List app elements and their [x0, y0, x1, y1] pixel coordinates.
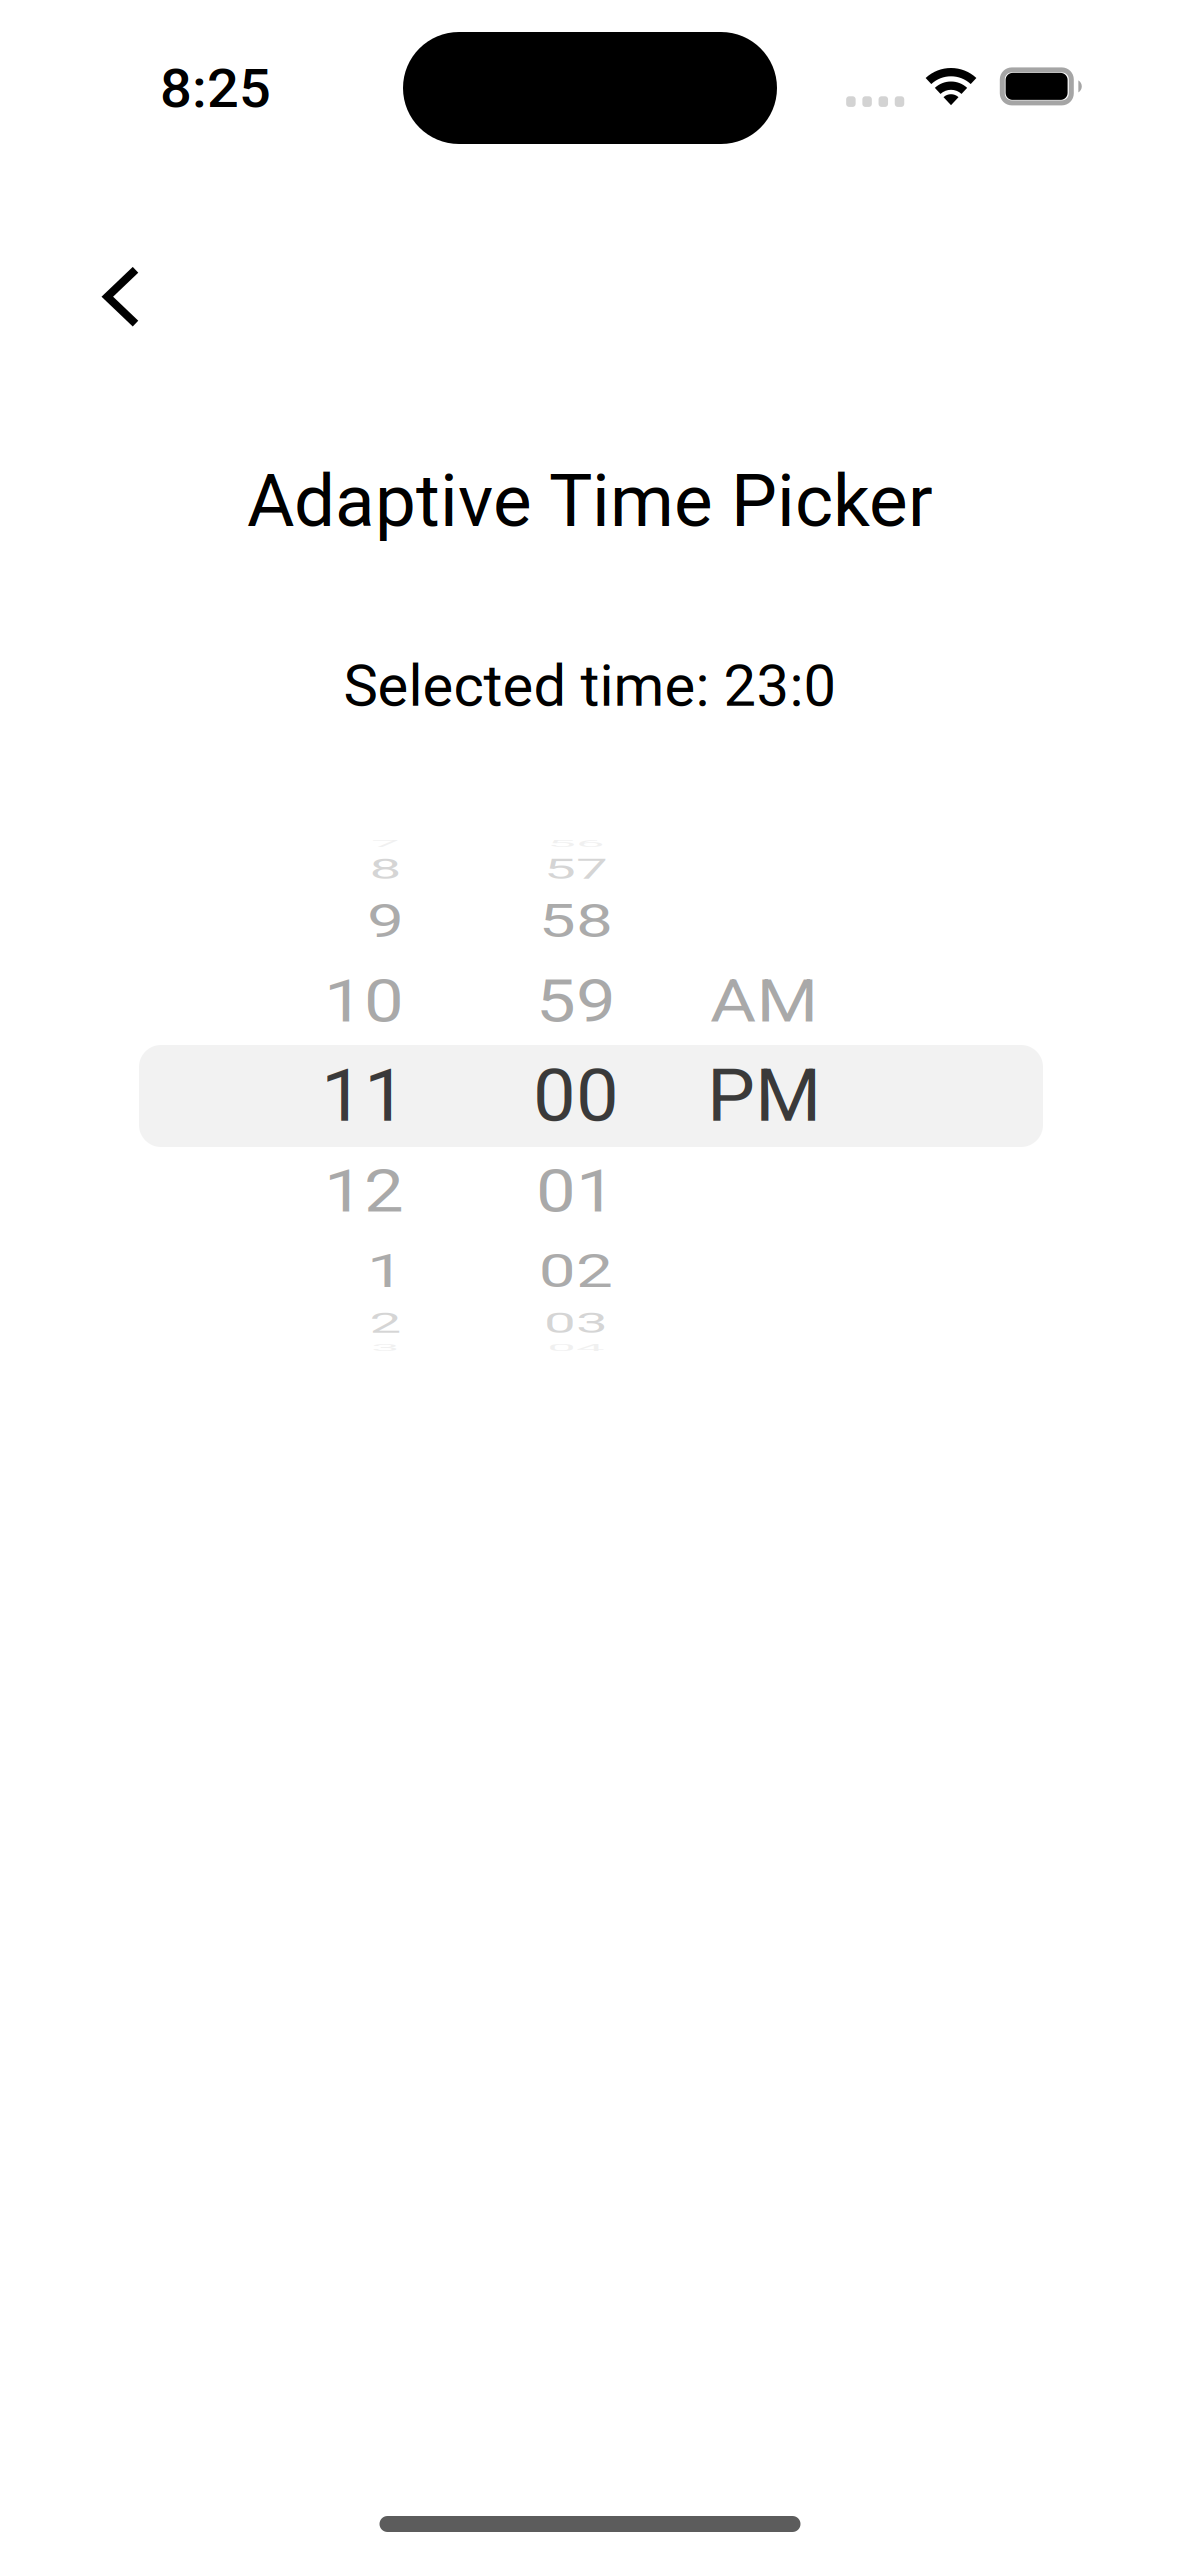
staticText: 02 — [533, 1226, 619, 1316]
staticText: 01 — [533, 1146, 619, 1236]
staticText: Adaptive Time Picker — [247, 458, 933, 544]
staticText: 1 — [364, 1226, 407, 1316]
staticText: PM — [707, 1051, 821, 1141]
staticText: 12 — [321, 1146, 407, 1236]
staticText: Selected time: 23:0 — [343, 652, 836, 720]
staticText: 04 — [533, 1303, 619, 1393]
staticText: 56 — [533, 799, 619, 889]
staticText: 10 — [321, 956, 407, 1046]
button[interactable]: Back — [45, 222, 195, 372]
staticText: 57 — [533, 824, 619, 914]
staticText: 59 — [533, 956, 619, 1046]
staticText: 58 — [533, 876, 619, 966]
staticText: 2 — [364, 1278, 407, 1368]
staticText: 00 — [533, 1051, 619, 1141]
staticText: 7 — [364, 799, 407, 889]
staticText: 8 — [364, 824, 407, 914]
staticText: 11 — [321, 1051, 407, 1141]
staticText: AM — [706, 956, 822, 1046]
staticText: 3 — [364, 1303, 407, 1393]
staticText: 8:25 — [160, 56, 271, 122]
staticText: 9 — [364, 876, 407, 966]
staticText: 03 — [533, 1278, 619, 1368]
